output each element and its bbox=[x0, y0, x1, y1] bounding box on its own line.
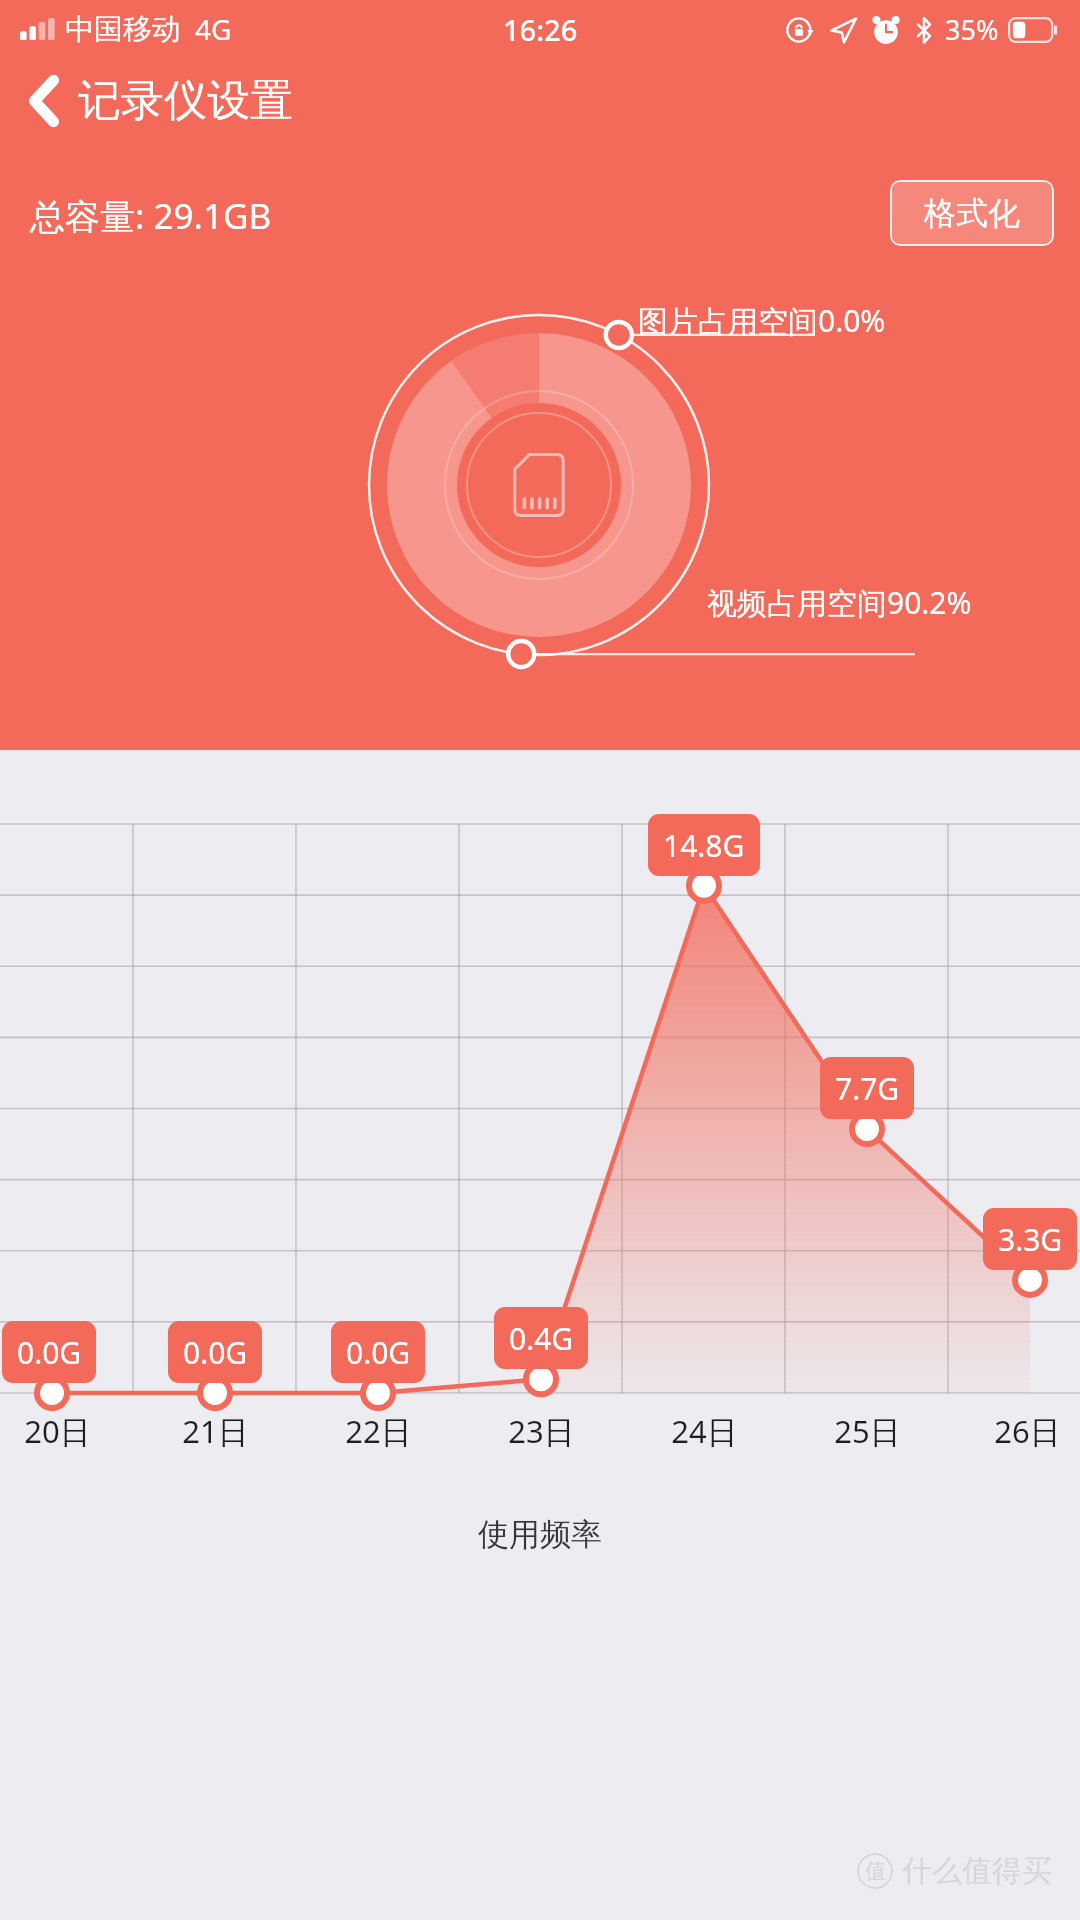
staticText: 使用频率 bbox=[478, 1515, 602, 1554]
staticText: 26日 bbox=[994, 1410, 1061, 1452]
staticText: 4G bbox=[195, 10, 232, 48]
staticText: 0.4G bbox=[509, 1318, 574, 1359]
staticText: 24日 bbox=[671, 1410, 738, 1452]
staticText: 25日 bbox=[834, 1410, 901, 1452]
staticText: 35% bbox=[945, 11, 999, 48]
staticText: 7.7G bbox=[835, 1068, 900, 1109]
staticText: 3.3G bbox=[998, 1219, 1063, 1260]
staticText: 值 bbox=[865, 1858, 886, 1884]
staticText: 23日 bbox=[508, 1410, 575, 1452]
staticText: 0.0G bbox=[17, 1332, 82, 1373]
staticText: 14.8G bbox=[663, 825, 745, 866]
staticText: 0.0G bbox=[183, 1332, 248, 1373]
staticText: 总容量: 29.1GB bbox=[30, 192, 272, 240]
staticText: 什么值得买 bbox=[902, 1852, 1052, 1890]
staticText: 0.0G bbox=[346, 1332, 411, 1373]
button[interactable]: Back 记录仪设置 bbox=[20, 68, 301, 134]
staticText: 视频占用空间90.2% bbox=[707, 582, 972, 623]
staticText: 中国移动 bbox=[65, 11, 181, 48]
staticText: 格式化 bbox=[924, 193, 1020, 233]
staticText: 图片占用空间0.0% bbox=[638, 300, 886, 341]
staticText: 16:26 bbox=[503, 10, 578, 49]
staticText: 21日 bbox=[182, 1410, 249, 1452]
button[interactable]: 格式化 bbox=[890, 180, 1054, 246]
staticText: 记录仪设置 bbox=[78, 74, 293, 128]
staticText: 20日 bbox=[24, 1410, 91, 1452]
staticText: 22日 bbox=[345, 1410, 412, 1452]
